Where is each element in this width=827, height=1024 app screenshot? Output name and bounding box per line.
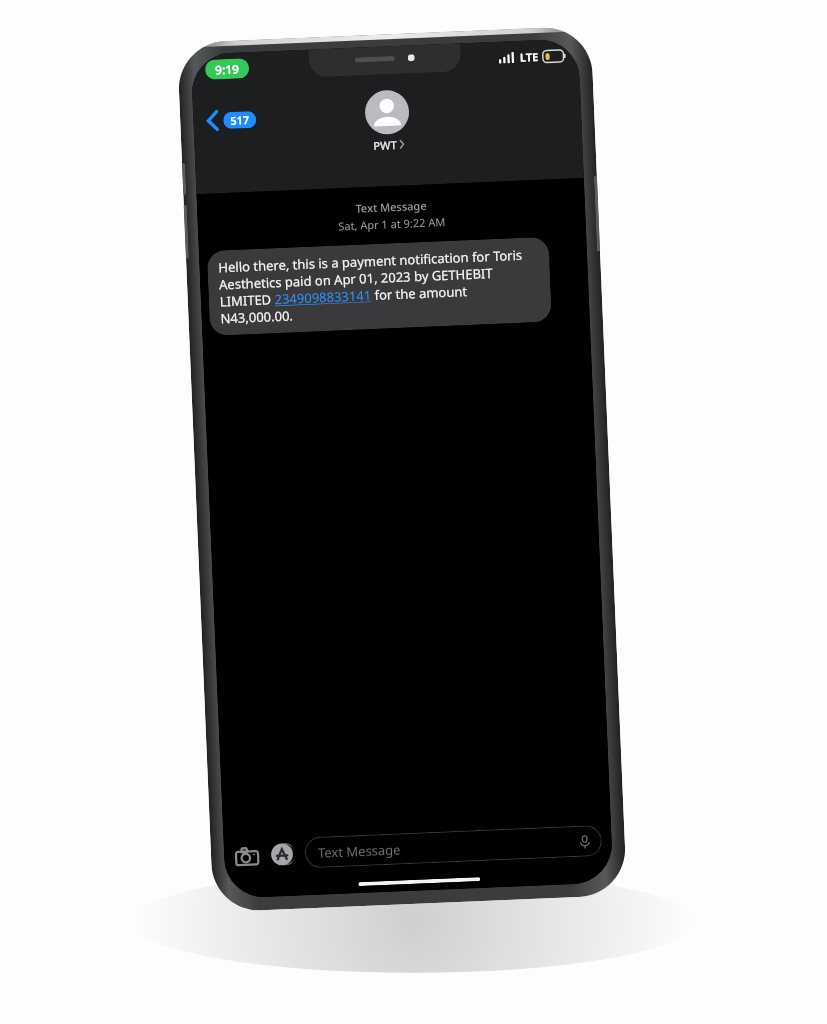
button[interactable]: Dictate (576, 833, 593, 850)
staticText: Text Message (318, 840, 401, 862)
staticText: Hello there, this is a payment notificat… (218, 245, 541, 327)
staticText: 9:19 (215, 60, 239, 77)
button[interactable]: Text Message (304, 825, 602, 868)
staticText: Sat, Apr 1 at 9:22 AM (198, 208, 586, 239)
button[interactable]: Back, 517 unread (202, 106, 261, 134)
button[interactable]: App Store (268, 841, 296, 868)
button[interactable]: Camera (233, 842, 261, 869)
staticText: LTE (519, 49, 539, 65)
staticText: Text Message (197, 191, 585, 222)
staticText: 517 (230, 112, 249, 128)
button[interactable]: Hello there, this is a payment notificat… (207, 237, 552, 336)
button[interactable]: PWT (356, 87, 419, 156)
staticText: PWT (373, 137, 398, 153)
